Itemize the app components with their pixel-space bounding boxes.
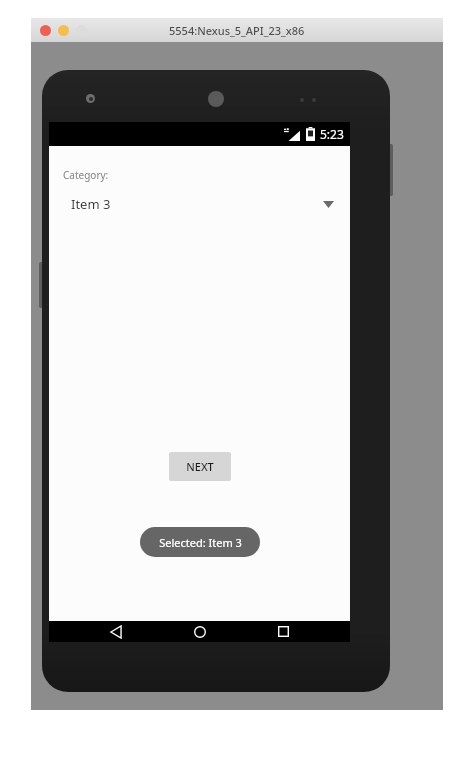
button[interactable]: Recent apps [266,621,300,642]
staticText: Selected: Item 3 [159,535,242,550]
staticText: Category: [63,168,109,182]
button[interactable]: Item 3 [63,191,340,217]
staticText: 5554:Nexus_5_API_23_x86 [169,23,305,38]
button[interactable]: Back [99,621,133,642]
staticText: NEXT [186,459,214,474]
staticText: Item 3 [71,195,111,213]
staticText: 5:23 [320,126,344,142]
button[interactable]: Home [183,621,217,642]
button[interactable]: NEXT [169,452,231,481]
